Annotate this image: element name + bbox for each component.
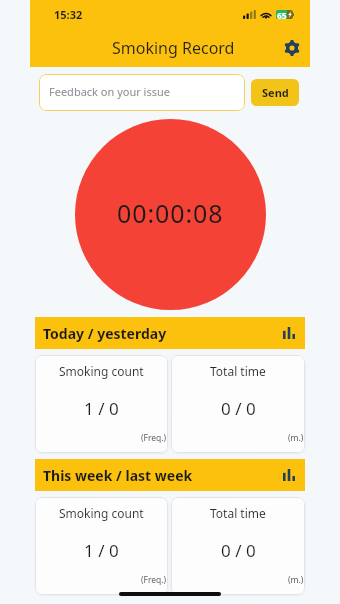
button[interactable]: This week / last week	[35, 459, 305, 491]
button[interactable]: Settings	[280, 36, 304, 60]
staticText: (m.)	[288, 432, 304, 444]
button[interactable]: Feedback on your issue	[39, 74, 245, 111]
button[interactable]: Today / yesterday	[35, 317, 305, 349]
button[interactable]: Total time	[171, 497, 305, 595]
staticText: Send	[262, 85, 289, 100]
staticText: Total time	[210, 363, 266, 379]
staticText: 0 / 0	[221, 397, 256, 420]
staticText: Feedback on your issue	[49, 84, 170, 99]
staticText: (Freq.)	[141, 574, 167, 586]
button[interactable]: Smoking count	[35, 497, 168, 595]
staticText: Smoking Record	[112, 37, 235, 59]
staticText: Smoking count	[59, 363, 144, 379]
button[interactable]: 00:00:08	[75, 119, 266, 310]
button[interactable]: Send	[251, 79, 299, 106]
staticText: 1 / 0	[84, 397, 119, 420]
staticText: Total time	[210, 505, 266, 521]
staticText: 1 / 0	[84, 539, 119, 562]
button[interactable]: Smoking count	[35, 355, 168, 453]
button[interactable]: Total time	[171, 355, 305, 453]
staticText: Today / yesterday	[43, 324, 167, 343]
staticText: 65	[277, 10, 287, 19]
staticText: (m.)	[288, 574, 304, 586]
staticText: (Freq.)	[141, 432, 167, 444]
staticText: 0 / 0	[221, 539, 256, 562]
staticText: Smoking count	[59, 505, 144, 521]
staticText: 15:32	[54, 7, 83, 22]
staticText: 00:00:08	[117, 196, 224, 230]
staticText: This week / last week	[43, 466, 193, 485]
